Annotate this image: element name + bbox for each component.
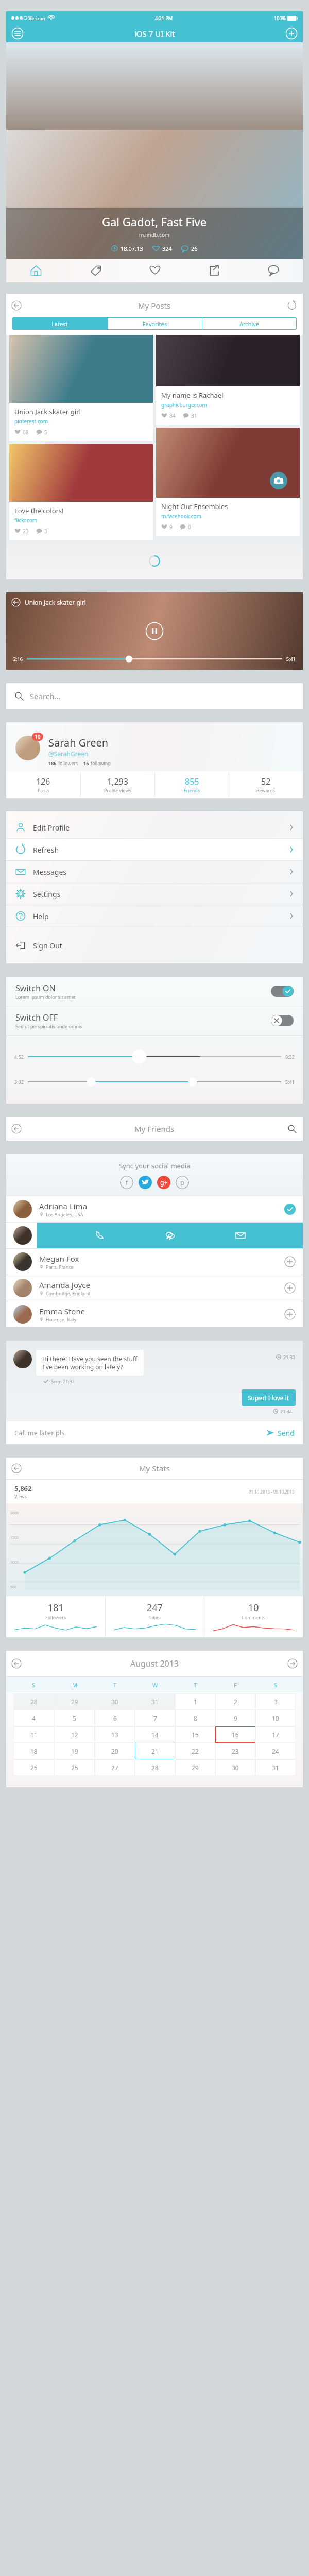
button[interactable]: Facebook: [120, 1176, 133, 1189]
button[interactable]: Search: [287, 1124, 297, 1133]
button[interactable]: 30: [215, 1759, 255, 1776]
button[interactable]: 52: [229, 771, 303, 798]
button[interactable]: 21: [135, 1743, 175, 1759]
staticText: Paris, France: [46, 1264, 74, 1270]
button[interactable]: Home: [6, 259, 66, 282]
button[interactable]: 17: [255, 1726, 296, 1743]
staticText: 4: [32, 1714, 36, 1722]
staticText: 9: [234, 1714, 237, 1722]
button[interactable]: Tags: [66, 259, 125, 282]
button[interactable]: Emma Stone: [6, 1301, 303, 1327]
button[interactable]: Next month: [287, 1658, 298, 1669]
button[interactable]: 1,293: [81, 771, 154, 798]
button[interactable]: 25: [54, 1759, 95, 1776]
button[interactable]: 28: [13, 1693, 54, 1710]
button[interactable]: Edit Profile: [6, 817, 303, 838]
button[interactable]: Menu: [11, 27, 24, 40]
button[interactable]: Back: [11, 1124, 22, 1134]
button[interactable]: 24: [255, 1743, 296, 1759]
button[interactable]: 2: [215, 1693, 255, 1710]
button[interactable]: Refresh: [287, 301, 297, 310]
button[interactable]: Add friend: [284, 1256, 296, 1267]
button[interactable]: Megan Fox: [6, 1249, 303, 1275]
button[interactable]: Messages: [6, 861, 303, 883]
staticText: 31: [151, 1698, 159, 1706]
button[interactable]: 10: [255, 1710, 296, 1726]
button[interactable]: Comments: [244, 259, 303, 282]
button[interactable]: Add: [285, 27, 298, 40]
button[interactable]: 181: [6, 1596, 105, 1637]
button[interactable]: 16: [215, 1726, 255, 1743]
button[interactable]: Favorites: [108, 317, 202, 330]
button[interactable]: 11: [13, 1726, 54, 1743]
button[interactable]: Send: [278, 1428, 295, 1438]
button[interactable]: Help: [6, 905, 303, 927]
button[interactable]: Email: [232, 1227, 249, 1244]
staticText: 29: [192, 1764, 199, 1772]
button[interactable]: Likes: [125, 259, 184, 282]
staticText: 25: [30, 1764, 38, 1772]
button[interactable]: 8: [175, 1710, 215, 1726]
button[interactable]: Add friend: [284, 1282, 296, 1294]
button[interactable]: 247: [106, 1596, 204, 1637]
button[interactable]: Add friend: [284, 1309, 296, 1320]
button[interactable]: Call: [91, 1227, 108, 1244]
button[interactable]: 10: [204, 1596, 303, 1637]
button[interactable]: Previous month: [11, 1658, 22, 1669]
button[interactable]: 14: [135, 1726, 175, 1743]
button[interactable]: 30: [95, 1693, 135, 1710]
button[interactable]: Adriana Lima: [6, 1196, 303, 1222]
button[interactable]: 27: [95, 1759, 135, 1776]
button[interactable]: 20: [95, 1743, 135, 1759]
button[interactable]: Switch OFF: [15, 1006, 294, 1035]
button[interactable]: 855: [155, 771, 229, 798]
button[interactable]: Latest: [12, 317, 107, 330]
staticText: Switch OFF: [15, 1012, 58, 1023]
staticText: graphicburger.com: [161, 401, 207, 409]
staticText: My Friends: [134, 1124, 175, 1134]
button[interactable]: Google Plus: [157, 1176, 170, 1189]
button[interactable]: Pinterest: [176, 1176, 189, 1189]
button[interactable]: 6: [95, 1710, 135, 1726]
staticText: Rewards: [256, 787, 276, 793]
button[interactable]: Back: [11, 1463, 22, 1473]
button[interactable]: 28: [135, 1759, 175, 1776]
button[interactable]: 29: [175, 1759, 215, 1776]
button[interactable]: Camera: [270, 472, 287, 489]
button[interactable]: 31: [255, 1759, 296, 1776]
button[interactable]: 19: [54, 1743, 95, 1759]
button[interactable]: 7: [135, 1710, 175, 1726]
button[interactable]: Share: [184, 259, 244, 282]
button[interactable]: 1: [175, 1693, 215, 1710]
button[interactable]: Twitter: [139, 1176, 152, 1189]
button[interactable]: 13: [95, 1726, 135, 1743]
button[interactable]: Back: [11, 300, 22, 311]
button[interactable]: Super! I love it: [248, 1394, 289, 1402]
button[interactable]: 31: [135, 1693, 175, 1710]
button[interactable]: 22: [175, 1743, 215, 1759]
button[interactable]: Settings: [6, 883, 303, 905]
button[interactable]: 3: [255, 1693, 296, 1710]
staticText: Latest: [51, 320, 68, 328]
button[interactable]: Refresh: [6, 839, 303, 860]
button[interactable]: 12: [54, 1726, 95, 1743]
button[interactable]: 29: [54, 1693, 95, 1710]
button[interactable]: 15: [175, 1726, 215, 1743]
button[interactable]: 126: [6, 771, 80, 798]
staticText: 5,862: [14, 1484, 32, 1493]
button[interactable]: Search...: [14, 683, 303, 709]
button[interactable]: 25: [13, 1759, 54, 1776]
button[interactable]: Back: [11, 598, 21, 607]
button[interactable]: Chat: [162, 1227, 178, 1244]
button[interactable]: Archive: [202, 317, 297, 330]
button[interactable]: 4: [13, 1710, 54, 1726]
button[interactable]: Amanda Joyce: [6, 1275, 303, 1301]
button[interactable]: 23: [215, 1743, 255, 1759]
button[interactable]: Sign Out: [6, 935, 303, 956]
button[interactable]: 9: [215, 1710, 255, 1726]
button[interactable]: 18: [13, 1743, 54, 1759]
button[interactable]: Pause: [145, 622, 164, 640]
button[interactable]: 5: [54, 1710, 95, 1726]
button[interactable]: Switch ON: [15, 977, 294, 1006]
button[interactable]: Added: [284, 1204, 296, 1215]
